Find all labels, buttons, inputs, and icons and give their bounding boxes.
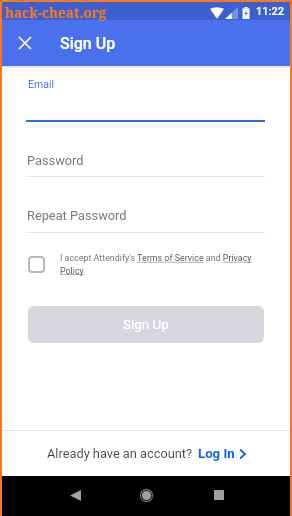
staticText: I accept Attendify's Terms of Service an… [60,253,265,276]
button[interactable]: Back [57,477,93,513]
staticText: Repeat Password [27,208,127,223]
button[interactable]: Already have an account? [2,431,290,476]
staticText: Log In [198,446,235,461]
button[interactable]: Recents [201,477,237,513]
staticText: Sign Up [123,317,169,333]
staticText: Already have an account? [47,446,193,461]
staticText: Password [27,153,84,168]
staticText: hack-cheat.org [5,4,107,22]
button[interactable]: Close [13,31,37,55]
staticText: 11:22 [256,5,284,18]
button[interactable]: I accept Attendify's Terms of Service an… [28,253,265,276]
staticText: Sign Up [60,34,116,53]
staticText: Email [28,78,54,90]
button[interactable]: Sign Up [28,306,264,343]
button[interactable]: Home [128,477,164,513]
